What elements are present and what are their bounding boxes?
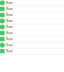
staticText: Row bbox=[6, 13, 12, 17]
staticText: Row bbox=[6, 25, 12, 29]
staticText: Row bbox=[6, 37, 12, 41]
staticText: Row bbox=[6, 43, 12, 47]
staticText: Row bbox=[6, 1, 12, 5]
staticText: Row bbox=[6, 49, 12, 53]
staticText: Row bbox=[6, 31, 12, 35]
staticText: Row bbox=[6, 7, 12, 11]
staticText: Row bbox=[6, 19, 12, 23]
